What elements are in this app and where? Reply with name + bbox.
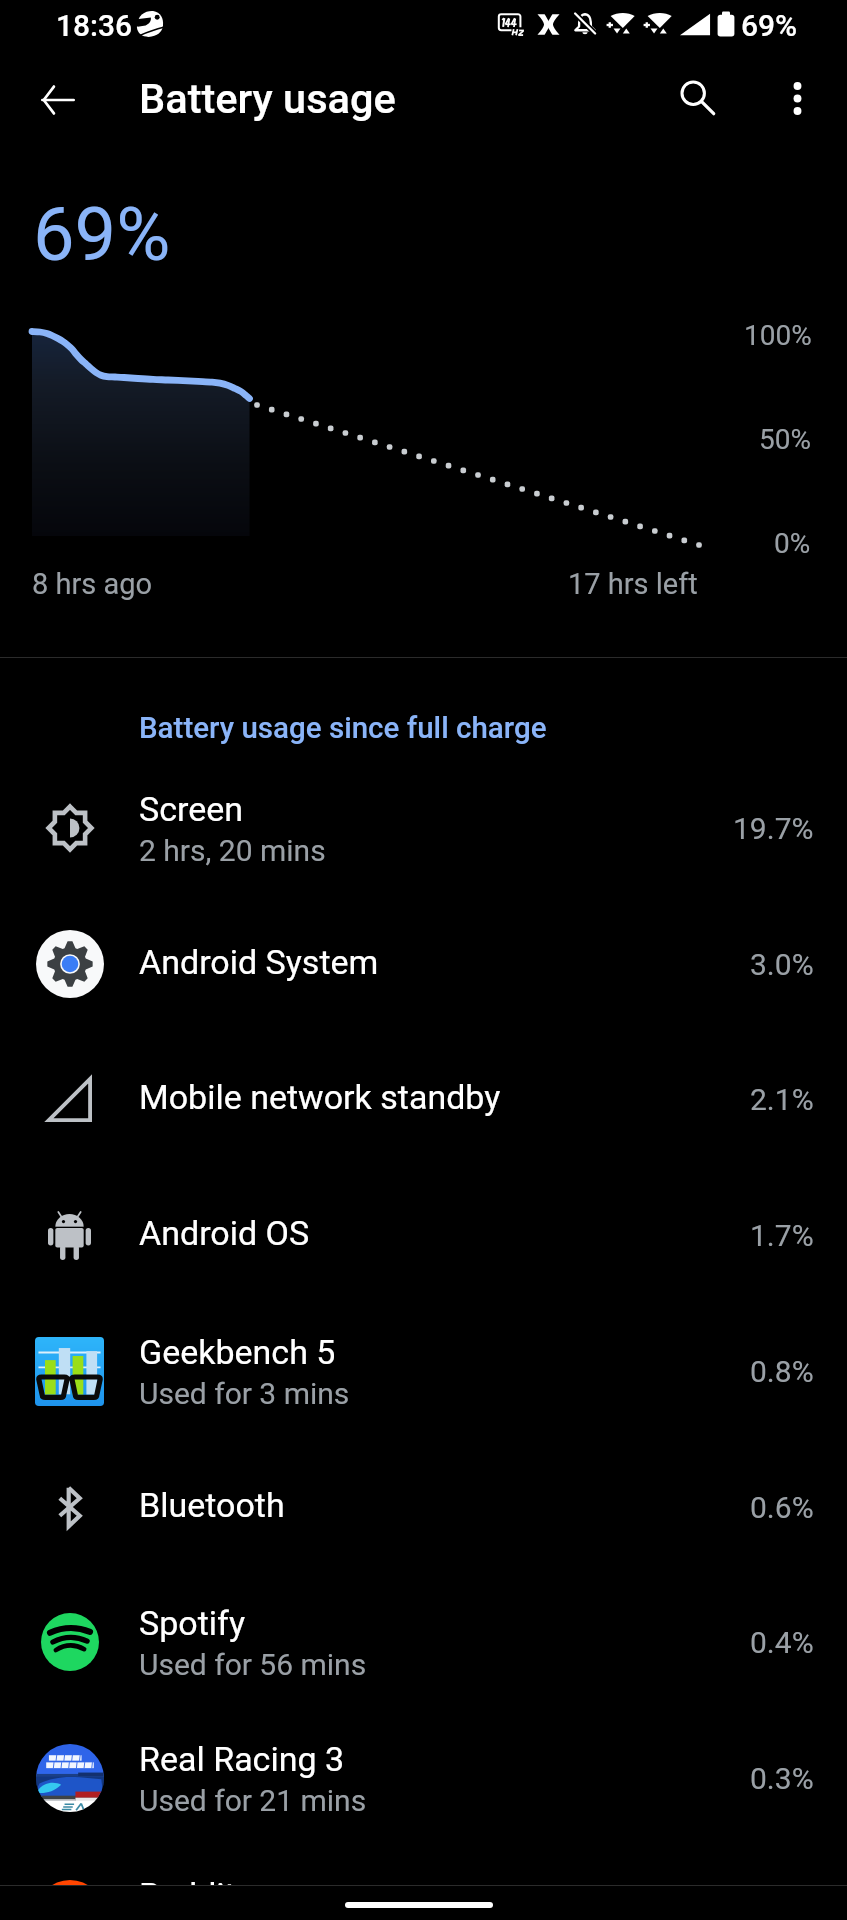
staticText: 0% — [774, 527, 811, 560]
button[interactable]: Screen — [0, 760, 847, 896]
staticText: Screen — [139, 789, 244, 829]
staticText: 50% — [759, 423, 811, 456]
staticText: 0.8% — [750, 1354, 814, 1389]
button[interactable]: More options — [761, 62, 833, 134]
staticText: Android System — [139, 942, 379, 982]
staticText: 2.1% — [750, 1082, 814, 1117]
staticText: 69% — [741, 8, 798, 43]
button[interactable]: Geekbench 5 — [0, 1303, 847, 1439]
staticText: 2 hrs, 20 mins — [139, 833, 326, 868]
button[interactable]: Android System — [0, 896, 847, 1032]
staticText: Used for 3 mins — [139, 1376, 350, 1411]
staticText: Android OS — [139, 1213, 310, 1253]
button[interactable]: Bluetooth — [0, 1439, 847, 1575]
staticText: Geekbench 5 — [139, 1332, 336, 1372]
staticText: 69% — [33, 191, 171, 278]
staticText: 19.7% — [733, 811, 814, 846]
staticText: Real Racing 3 — [139, 1739, 345, 1779]
staticText: Spotify — [139, 1603, 245, 1643]
staticText: 17 hrs left — [568, 567, 698, 601]
staticText: Bluetooth — [139, 1485, 285, 1525]
staticText: 8 hrs ago — [32, 567, 153, 601]
staticText: 100% — [744, 319, 812, 352]
staticText: Battery usage since full charge — [139, 711, 547, 746]
button[interactable]: Spotify — [0, 1574, 847, 1710]
staticText: 1.7% — [750, 1218, 814, 1253]
staticText: Used for 56 mins — [139, 1647, 367, 1682]
staticText: Mobile network standby — [139, 1077, 501, 1117]
staticText: 3.0% — [750, 947, 814, 982]
button[interactable]: Mobile network standby — [0, 1031, 847, 1167]
staticText: Reddit — [139, 1875, 236, 1915]
button[interactable]: Back — [27, 69, 89, 131]
staticText: 0.4% — [750, 1625, 814, 1660]
button[interactable]: Real Racing 3 — [0, 1710, 847, 1846]
staticText: 0.6% — [750, 1490, 814, 1525]
button[interactable]: Reddit — [0, 1846, 847, 1920]
staticText: Used for 21 mins — [139, 1783, 367, 1818]
button[interactable]: Search — [661, 61, 733, 133]
button[interactable]: Android OS — [0, 1167, 847, 1303]
staticText: 18:36 — [56, 8, 133, 43]
staticText: Battery usage — [139, 74, 396, 123]
staticText: 0.3% — [750, 1761, 814, 1796]
